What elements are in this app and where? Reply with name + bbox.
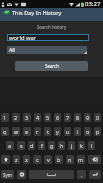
staticText: r [36, 128, 39, 135]
staticText: All [9, 47, 15, 54]
staticText: v [47, 156, 50, 163]
staticText: g [50, 142, 54, 149]
button[interactable]: All [7, 46, 87, 54]
button[interactable]: p [94, 127, 101, 136]
staticText: j [71, 142, 73, 149]
button[interactable]: f [38, 141, 45, 150]
staticText: x [25, 156, 28, 163]
staticText: d [30, 142, 34, 149]
button[interactable]: c [33, 155, 41, 164]
staticText: Search [45, 63, 59, 69]
staticText: z [15, 156, 18, 163]
button[interactable]: Shift [1, 155, 10, 164]
button[interactable]: 1 [1, 113, 9, 122]
staticText: 2 [14, 114, 18, 121]
staticText: This Day In History [12, 9, 62, 17]
button[interactable]: i [74, 127, 81, 136]
button[interactable]: q [1, 127, 9, 136]
button[interactable]: b [55, 155, 63, 164]
staticText: 4 [36, 114, 40, 121]
staticText: 5 [46, 114, 50, 121]
button[interactable]: o [84, 127, 91, 136]
staticText: i [77, 128, 79, 135]
button[interactable]: 6 [54, 113, 61, 122]
button[interactable]: 4 [34, 113, 41, 122]
staticText: h [60, 142, 64, 149]
staticText: Sym [3, 172, 12, 178]
button[interactable]: h [58, 141, 65, 150]
staticText: f [41, 142, 43, 149]
button[interactable]: y [54, 127, 61, 136]
button[interactable]: 9 [84, 113, 91, 122]
button[interactable]: Delete [88, 155, 101, 164]
staticText: Search history [0, 24, 103, 30]
staticText: 9 [86, 114, 90, 121]
staticText: world war [9, 34, 37, 41]
staticText: t [47, 128, 49, 135]
button[interactable]: 8 [74, 113, 81, 122]
staticText: q [3, 128, 7, 135]
button[interactable]: v [44, 155, 52, 164]
staticText: u [66, 128, 70, 135]
button[interactable]: 7 [64, 113, 71, 122]
button[interactable]: k [78, 141, 85, 150]
staticText: 8 [76, 114, 80, 121]
button[interactable]: 2 [12, 113, 20, 122]
staticText: y [56, 128, 59, 135]
button[interactable]: u [64, 127, 71, 136]
button[interactable]: a [6, 141, 14, 150]
button[interactable]: m [77, 155, 85, 164]
button[interactable]: g [48, 141, 55, 150]
staticText: m [78, 156, 84, 163]
staticText: s [20, 142, 23, 149]
staticText: 03:27 [85, 0, 101, 8]
staticText: . [81, 171, 83, 178]
button[interactable]: Sym [1, 170, 14, 179]
staticText: e [25, 128, 29, 135]
staticText: 0 [96, 114, 100, 121]
button[interactable]: Space [29, 170, 74, 179]
button[interactable]: 5 [44, 113, 51, 122]
staticText: p [96, 128, 100, 135]
button[interactable]: j [68, 141, 75, 150]
staticText: l [91, 142, 93, 149]
staticText: o [86, 128, 90, 135]
button[interactable]: t [44, 127, 51, 136]
button[interactable]: x [23, 155, 30, 164]
button[interactable]: e [23, 127, 31, 136]
staticText: 1 [3, 114, 7, 121]
button[interactable]: r [34, 127, 41, 136]
staticText: 3 [25, 114, 29, 121]
staticText: k [80, 142, 83, 149]
button[interactable]: . [77, 170, 86, 179]
button[interactable]: w [12, 127, 20, 136]
button[interactable]: 0 [94, 113, 101, 122]
button[interactable]: s [17, 141, 25, 150]
staticText: b [57, 156, 61, 163]
button[interactable]: Enter [89, 170, 101, 179]
button[interactable]: z [13, 155, 20, 164]
button[interactable]: Search [15, 61, 88, 71]
button[interactable]: l [88, 141, 95, 150]
staticText: 7 [66, 114, 70, 121]
button[interactable]: d [28, 141, 35, 150]
staticText: a [8, 142, 12, 149]
staticText: n [68, 156, 72, 163]
staticText: w [14, 128, 19, 135]
staticText: 6 [56, 114, 60, 121]
button[interactable]: 3 [23, 113, 31, 122]
button[interactable]: n [66, 155, 74, 164]
button[interactable]: Settings [17, 170, 26, 179]
staticText: c [36, 156, 39, 163]
